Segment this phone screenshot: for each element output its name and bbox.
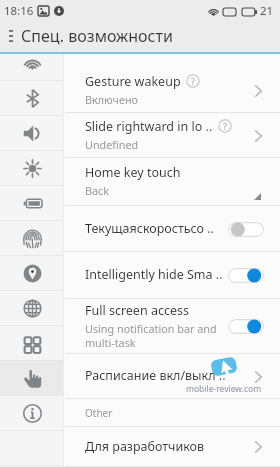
button[interactable]: Intelligently hide Sma .. — [65, 252, 280, 299]
staticText: ? — [223, 120, 227, 132]
button[interactable]: Toggle — [228, 319, 264, 334]
staticText: Other — [85, 406, 113, 420]
staticText: Using notification bar and multi-task — [85, 321, 217, 350]
button[interactable]: Текущаяскоростьсо .. — [65, 206, 280, 252]
button[interactable]: vol — [0, 116, 64, 151]
button[interactable]: hand — [0, 361, 64, 396]
staticText: Спец. возможности — [21, 25, 173, 47]
staticText: Intelligently hide Sma .. — [85, 266, 223, 283]
button[interactable]: Gesture wakeup — [65, 68, 280, 113]
button[interactable]: Toggle — [228, 222, 264, 237]
button[interactable]: bt — [0, 81, 64, 116]
staticText: mobile-review.com — [186, 383, 262, 395]
button[interactable]: info — [0, 396, 64, 431]
button[interactable]: wifi — [0, 46, 64, 81]
button[interactable]: Toggle — [228, 268, 264, 283]
button[interactable]: grid — [0, 326, 64, 361]
staticText: Gesture wakeup — [85, 73, 181, 90]
staticText: Slide rightward in lo .. — [85, 118, 213, 135]
staticText: Включено — [85, 92, 138, 107]
staticText: 18:16 — [4, 3, 34, 19]
staticText: Home key touch — [85, 164, 181, 181]
staticText: 21 — [260, 3, 274, 19]
staticText: ? — [191, 75, 195, 87]
button[interactable]: globe — [0, 291, 64, 326]
button[interactable]: Для разработчиков — [65, 427, 280, 467]
button[interactable]: Menu — [0, 22, 21, 50]
button[interactable]: Full screen access — [65, 299, 280, 354]
staticText: Full screen access — [85, 302, 189, 319]
button[interactable]: Slide rightward in lo .. — [65, 113, 280, 158]
button[interactable]: sun — [0, 151, 64, 186]
staticText: Undefined — [85, 137, 139, 152]
staticText: Текущаяскоростьсо .. — [85, 220, 214, 237]
button[interactable]: pin — [0, 256, 64, 291]
button[interactable]: bat — [0, 186, 64, 221]
staticText: Расписание вкл/выкл .. — [85, 367, 226, 384]
button[interactable]: finger — [0, 221, 64, 256]
button[interactable]: Расписание вкл/выкл .. — [65, 354, 280, 399]
staticText: Для разработчиков — [85, 438, 205, 455]
button[interactable]: Home key touch — [65, 158, 280, 206]
staticText: Back — [85, 183, 110, 198]
